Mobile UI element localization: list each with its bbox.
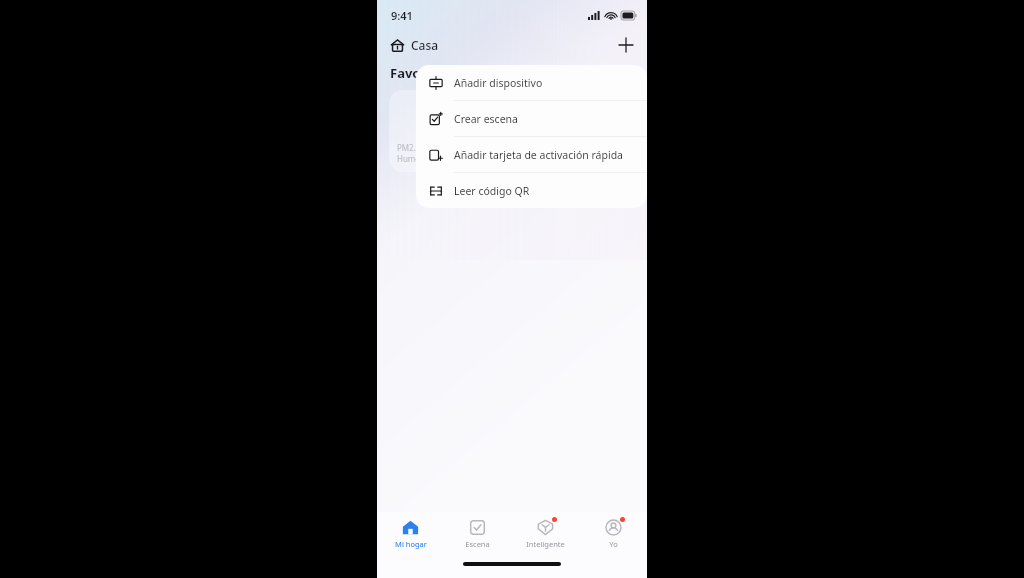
staticText: Escena <box>465 539 490 549</box>
button[interactable]: Yo <box>579 512 647 556</box>
button[interactable]: Mi hogar <box>377 512 444 556</box>
button[interactable]: Añadir dispositivo <box>416 65 647 100</box>
button[interactable]: Editar <box>480 180 545 202</box>
button[interactable]: Crear escena <box>416 101 647 136</box>
staticText: PM2.5 <box>397 142 421 153</box>
staticText: Inteligente <box>526 539 565 549</box>
staticText: Crear escena <box>454 112 518 126</box>
button[interactable]: PM2.5 <box>389 90 469 172</box>
button[interactable]: Añadir <box>613 32 639 58</box>
staticText: Mi hogar <box>395 539 427 549</box>
staticText: Añadir tarjeta de activación rápida <box>454 148 623 162</box>
staticText: Editar <box>505 184 534 198</box>
staticText: Humedad <box>397 153 435 164</box>
button[interactable]: Leer código QR <box>416 173 647 208</box>
staticText: Casa <box>411 37 439 53</box>
staticText: Añadir dispositivo <box>454 76 543 90</box>
staticText: Leer código QR <box>454 184 530 198</box>
staticText: Yo <box>609 539 618 549</box>
button[interactable]: Casa <box>388 35 441 55</box>
button[interactable]: Escena <box>444 512 511 556</box>
button[interactable]: Añadir tarjeta de activación rápida <box>416 137 647 172</box>
button[interactable]: Inteligente <box>511 512 579 556</box>
staticText: Favoritos <box>390 64 451 82</box>
staticText: 9:41 <box>391 8 413 23</box>
